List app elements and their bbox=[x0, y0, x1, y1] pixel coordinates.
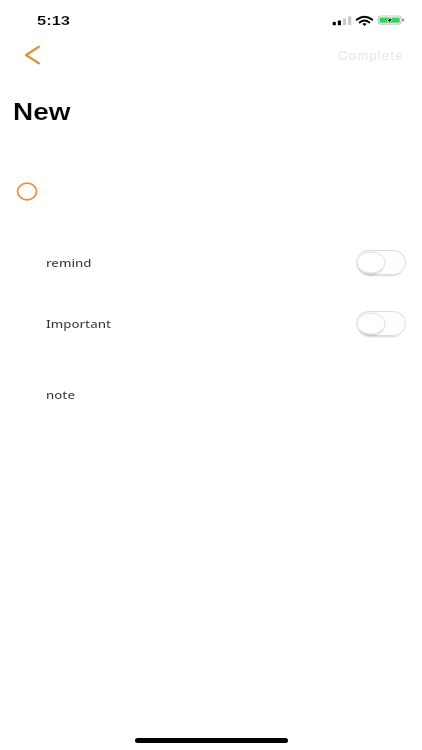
staticText: Important bbox=[46, 316, 111, 332]
button[interactable]: Back bbox=[14, 39, 48, 71]
button[interactable]: Toggle bbox=[356, 250, 406, 275]
button[interactable]: note bbox=[0, 382, 422, 407]
staticText: New bbox=[13, 98, 71, 125]
button[interactable]: remind bbox=[0, 250, 422, 275]
staticText: Complete bbox=[338, 49, 405, 63]
staticText: remind bbox=[46, 255, 92, 271]
button[interactable]: Complete bbox=[338, 49, 401, 63]
staticText: note bbox=[46, 387, 76, 403]
button[interactable]: Mark complete bbox=[14, 180, 41, 204]
button[interactable]: Important bbox=[0, 311, 422, 336]
staticText: 5:13 bbox=[37, 14, 71, 28]
button[interactable]: Toggle bbox=[356, 311, 406, 336]
